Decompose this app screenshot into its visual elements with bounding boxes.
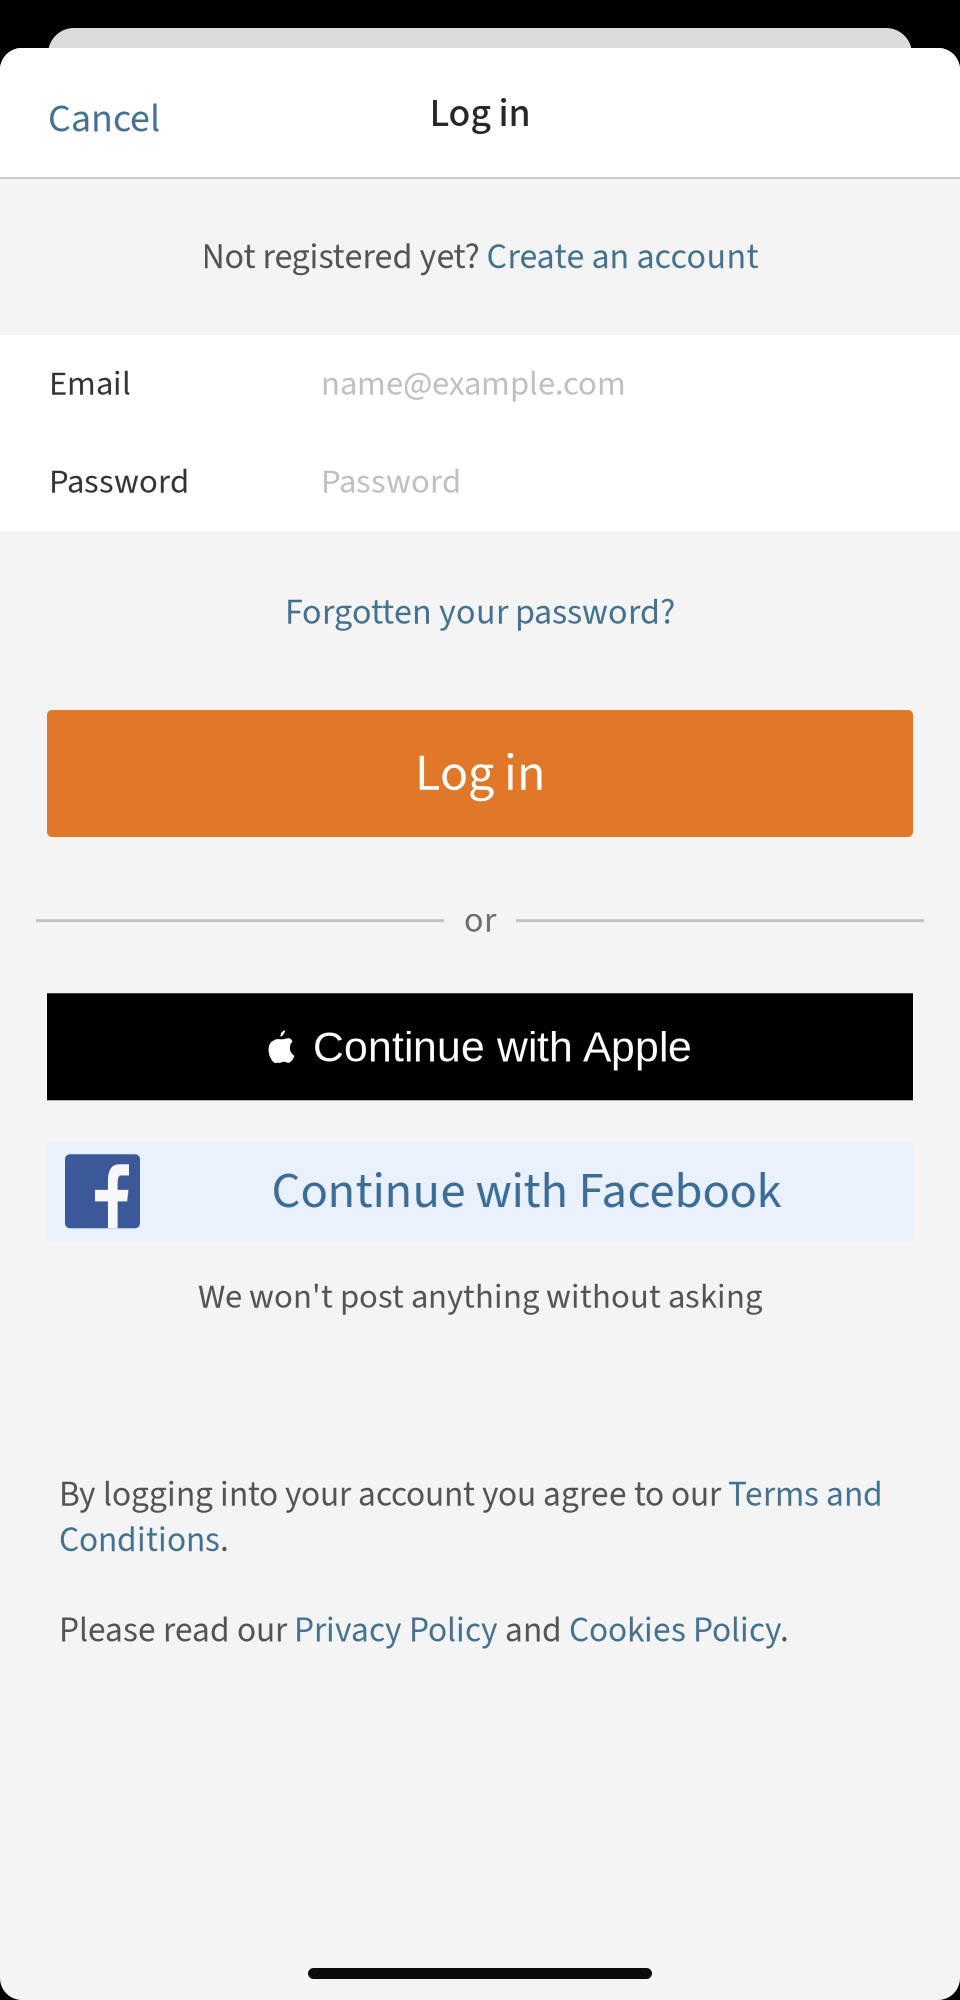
- button[interactable]: Please read our Privacy Policy and Cooki…: [59, 1565, 918, 1656]
- button[interactable]: Continue with Facebook: [47, 1141, 913, 1241]
- staticText: Log in: [429, 85, 530, 142]
- staticText: Cancel: [48, 90, 160, 147]
- button[interactable]: By logging into your account you agree t…: [59, 1470, 918, 1565]
- staticText: Continue with Facebook: [271, 1155, 781, 1227]
- button[interactable]: Email: [0, 335, 960, 433]
- staticText: We won't post anything without asking: [198, 1272, 762, 1322]
- staticText: Please read our Privacy Policy and Cooki…: [59, 1605, 789, 1656]
- staticText: Log in: [415, 736, 545, 810]
- staticText: Create an account: [486, 231, 758, 283]
- staticText: Not registered yet?: [201, 231, 486, 283]
- staticText: name@example.com: [321, 359, 626, 409]
- button[interactable]: Create an account: [486, 231, 758, 283]
- button[interactable]: Password: [0, 433, 960, 531]
- staticText: Continue with Apple: [313, 1023, 692, 1071]
- staticText: or: [464, 895, 496, 946]
- button[interactable]: Log in: [47, 710, 913, 837]
- button[interactable]: Continue with Apple: [47, 993, 913, 1100]
- staticText: Email: [49, 359, 131, 409]
- staticText: By logging into your account you agree t…: [59, 1470, 883, 1565]
- staticText: Forgotten your password?: [285, 587, 675, 638]
- button[interactable]: Cancel: [0, 59, 186, 167]
- staticText: Password: [49, 457, 189, 507]
- button[interactable]: Forgotten your password?: [0, 531, 960, 710]
- staticText: Password: [321, 457, 461, 507]
